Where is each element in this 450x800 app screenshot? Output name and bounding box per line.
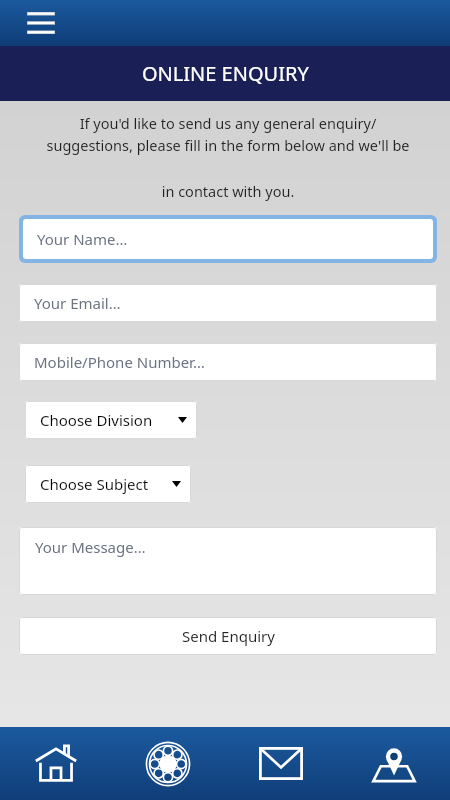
button[interactable]: Emblem [112,727,224,800]
button[interactable]: Your Email… [19,284,437,322]
button[interactable]: Choose Subject [25,465,191,503]
staticText: If you'd like to send us any general enq… [14,113,442,201]
staticText: Send Enquiry [182,626,275,646]
staticText: Your Email… [34,293,121,313]
staticText: Choose Subject [40,474,149,494]
button[interactable]: Mobile/Phone Number… [19,343,437,381]
button[interactable]: Choose Division [25,401,197,439]
staticText: Choose Division [40,410,153,430]
button[interactable]: Send Enquiry [19,617,437,655]
staticText: Your Message… [35,537,146,557]
button[interactable]: Your Message… [19,527,437,595]
button[interactable]: Menu [24,7,58,39]
staticText: ONLINE ENQUIRY [142,60,309,87]
staticText: Mobile/Phone Number… [34,352,205,372]
button[interactable]: Mail [224,727,337,800]
button[interactable]: Your Name… [19,215,437,263]
button[interactable]: Home [0,727,112,800]
button[interactable]: Map [337,727,450,800]
staticText: Your Name… [37,229,128,249]
